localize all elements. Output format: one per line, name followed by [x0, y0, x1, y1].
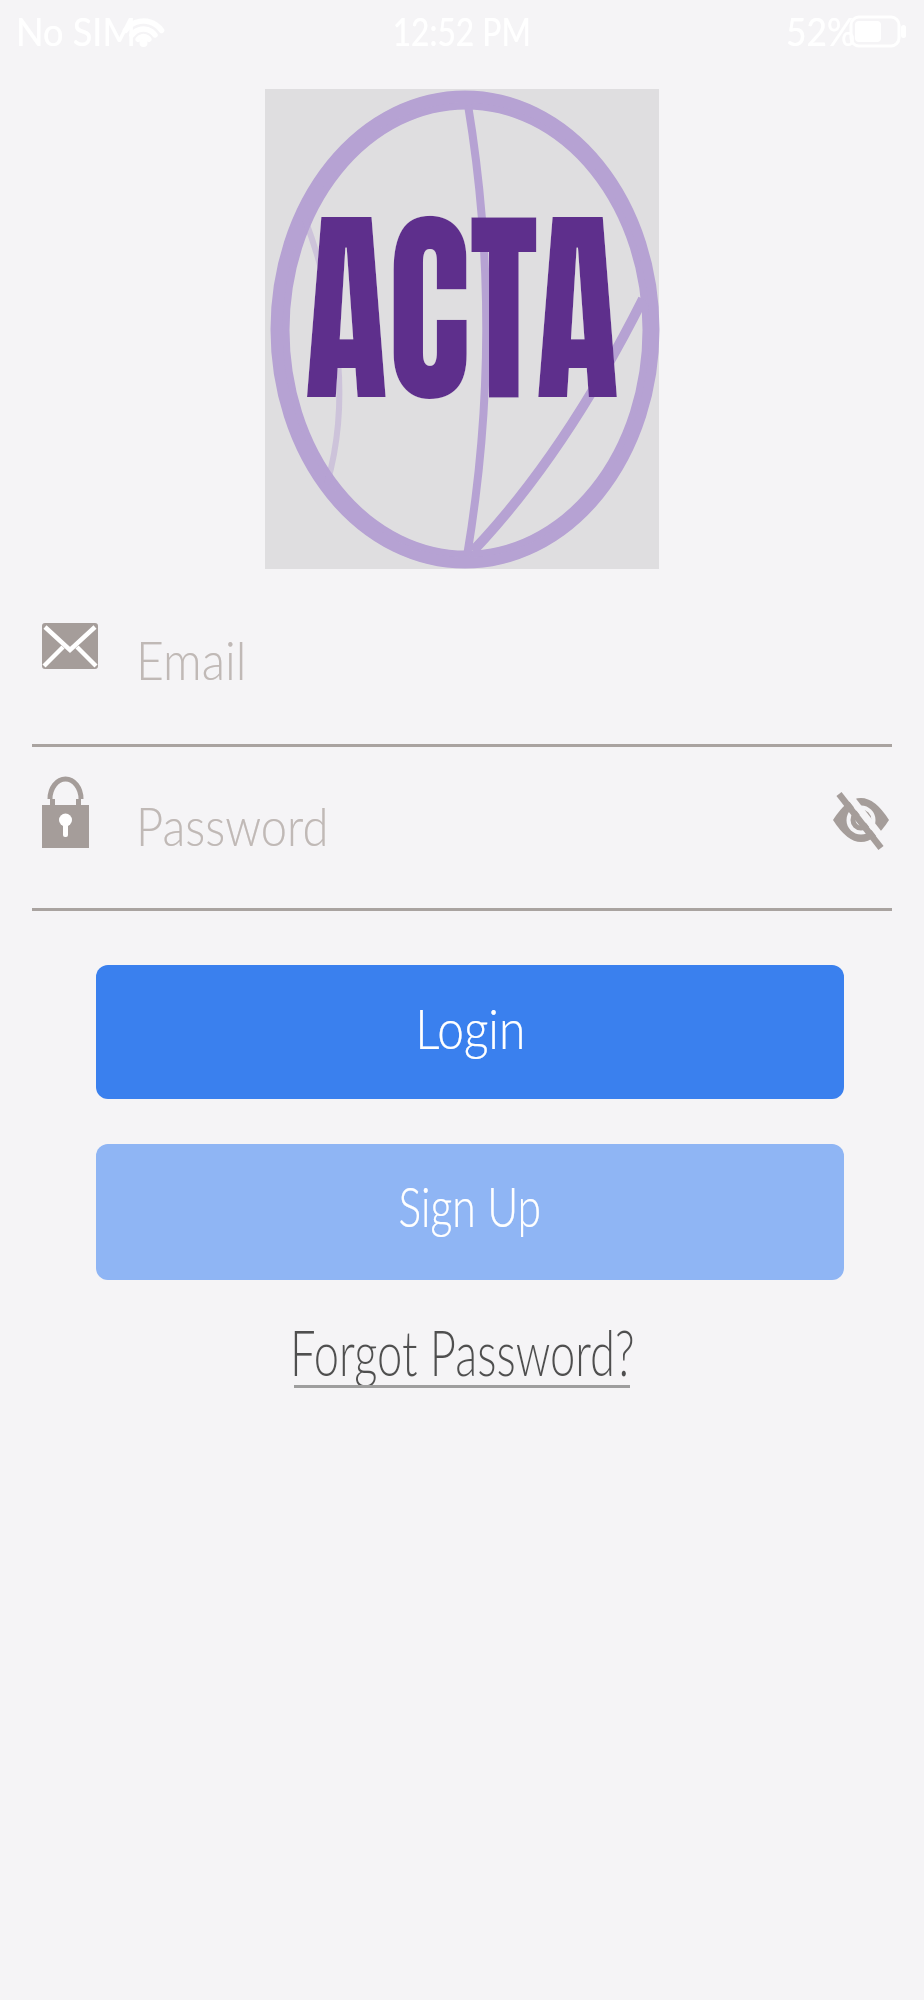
- staticText: Sign Up: [398, 1172, 542, 1239]
- button[interactable]: [32, 608, 892, 747]
- staticText: 12:52 PM: [393, 8, 531, 54]
- staticText: 52%: [786, 8, 856, 54]
- staticText: Email: [136, 627, 246, 692]
- button[interactable]: Sign Up: [96, 1144, 844, 1280]
- staticText: ACTA: [305, 151, 619, 441]
- button[interactable]: Forgot Password?: [219, 1313, 706, 1390]
- button[interactable]: [32, 770, 892, 911]
- staticText: Forgot Password?: [290, 1313, 635, 1390]
- button[interactable]: [833, 792, 889, 850]
- staticText: Password: [136, 793, 328, 858]
- staticText: No SIM: [16, 8, 137, 54]
- staticText: Login: [415, 994, 526, 1061]
- button[interactable]: Login: [96, 965, 844, 1099]
